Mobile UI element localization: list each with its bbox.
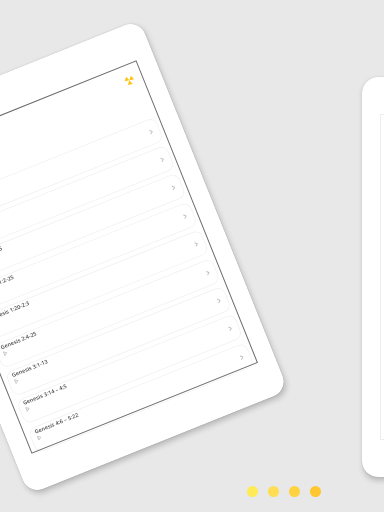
button[interactable]: Genesis 3:14 – 4:5	[16, 313, 243, 425]
button[interactable]	[268, 486, 279, 497]
button[interactable]: Genesis 1:2-25	[0, 201, 198, 313]
staticText: Genesis 2:4-25	[0, 329, 38, 350]
button[interactable]: Genesis 1:20-2:3	[0, 229, 209, 341]
button[interactable]	[310, 486, 321, 497]
button[interactable]: Genesis 2:4-25	[0, 172, 187, 284]
button[interactable]: Genesis 3:1-13	[4, 285, 232, 397]
staticText: Genesis 1:2-25	[0, 273, 15, 294]
button[interactable]: Genesis 1:20-2:3	[0, 144, 175, 256]
button[interactable]: App menu	[123, 74, 136, 87]
staticText: Genesis 1:20-2:3	[0, 299, 30, 322]
staticText: Genesis 3:1-13	[10, 357, 49, 378]
staticText: Genesis 2:4-25	[0, 244, 4, 265]
button[interactable]: Genesis 2:4-25	[0, 257, 221, 369]
button[interactable]	[247, 486, 258, 497]
staticText: Genesis 4:6 – 5:22	[33, 411, 79, 435]
button[interactable]	[289, 486, 300, 497]
button[interactable]: Genesis 1:1-19	[0, 116, 164, 228]
button[interactable]: Genesis 4:6 – 5:22	[27, 342, 255, 454]
staticText: Genesis 3:14 – 4:5	[22, 382, 68, 406]
